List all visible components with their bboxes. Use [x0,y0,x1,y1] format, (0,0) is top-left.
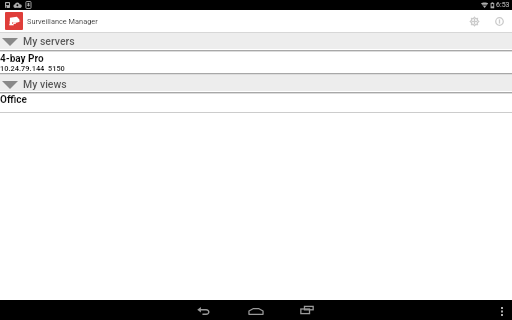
staticText: My views [23,78,67,90]
staticText: Surveillance Manager [27,17,98,26]
button[interactable]: Office [0,93,512,112]
button[interactable]: Home [241,300,270,320]
staticText: Office [0,94,27,106]
button[interactable]: Settings [466,13,482,29]
button[interactable]: My servers [0,32,512,49]
button[interactable]: My views [0,75,512,91]
staticText: 6:53 [496,1,510,9]
button[interactable]: Info [491,13,507,29]
button[interactable]: More options [495,300,509,320]
button[interactable]: 4-bay Pro [0,51,512,73]
button[interactable]: Surveillance Manager [5,12,23,30]
staticText: My servers [23,35,75,47]
button[interactable]: Back [189,300,218,320]
staticText: 4-bay Pro [0,53,44,65]
button[interactable]: Recent apps [292,300,321,320]
staticText: 10.24.79.144 5150 [0,64,65,73]
